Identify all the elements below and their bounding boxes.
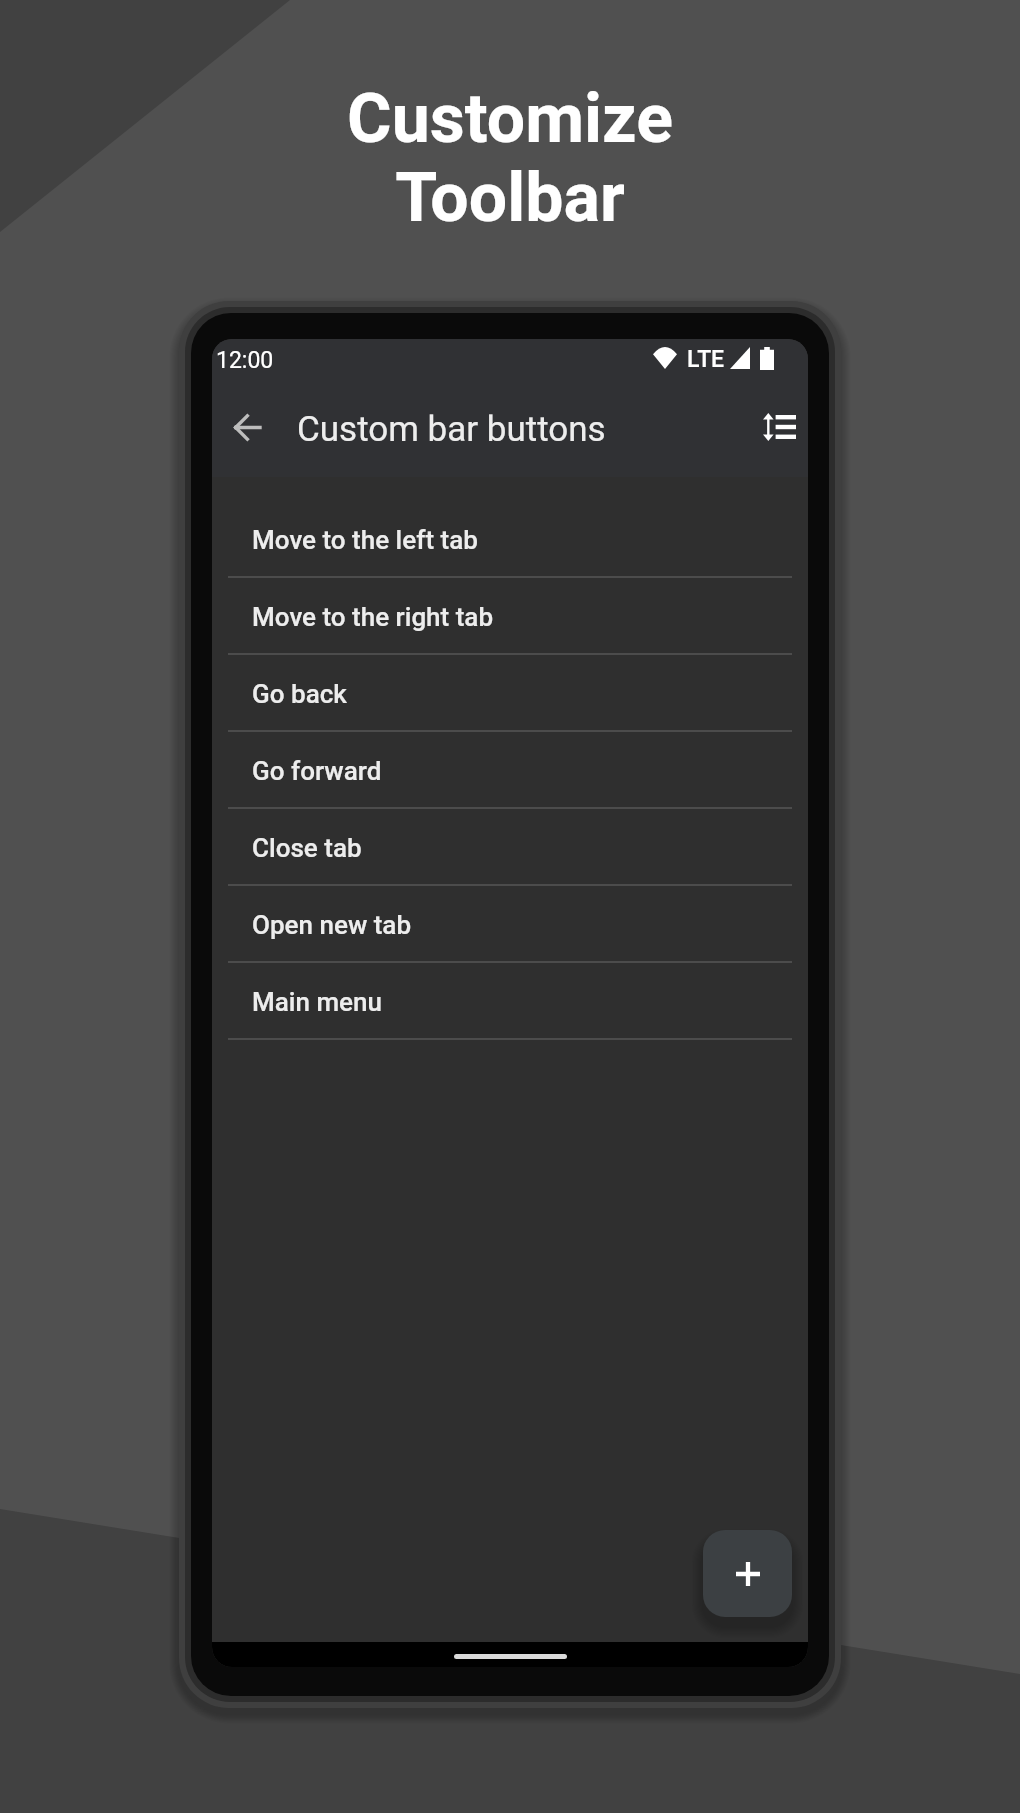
button[interactable]: Move to the left tab	[212, 501, 808, 578]
staticText: 12:00	[216, 347, 274, 374]
staticText: Open new tab	[252, 910, 412, 940]
staticText: Go forward	[252, 756, 382, 786]
button[interactable]: Go forward	[212, 732, 808, 809]
staticText: Go back	[252, 679, 347, 709]
staticText: Main menu	[252, 987, 382, 1017]
staticText: Custom bar buttons	[297, 409, 606, 450]
button[interactable]: Navigate up	[223, 403, 271, 451]
button[interactable]: Move to the right tab	[212, 578, 808, 655]
staticText: Move to the right tab	[252, 602, 494, 632]
staticText: Move to the left tab	[252, 525, 478, 555]
button[interactable]: Go back	[212, 655, 808, 732]
staticText: Customize	[347, 79, 673, 159]
staticText: LTE	[687, 346, 725, 373]
staticText: Toolbar	[395, 158, 625, 238]
button[interactable]: Sort	[755, 403, 803, 451]
button[interactable]: Main menu	[212, 963, 808, 1040]
button[interactable]: Add	[703, 1530, 792, 1617]
staticText: Close tab	[252, 833, 362, 863]
button[interactable]: Close tab	[212, 809, 808, 886]
button[interactable]: Open new tab	[212, 886, 808, 963]
